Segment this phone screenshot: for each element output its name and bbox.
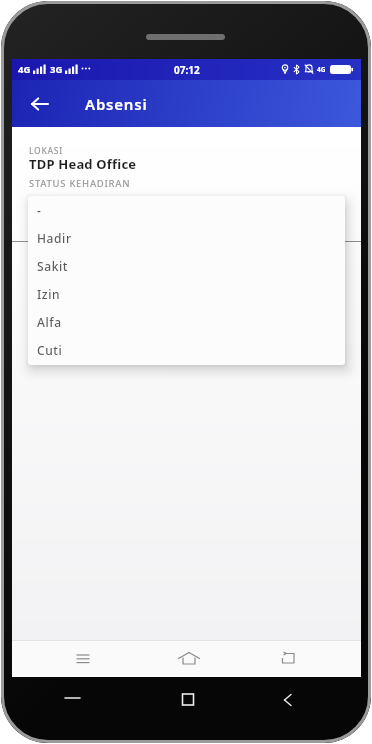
button[interactable] xyxy=(63,640,103,677)
staticText: Izin xyxy=(37,286,61,302)
staticText: Absensi xyxy=(85,94,148,114)
button[interactable]: Sakit xyxy=(28,252,345,280)
staticText: STATUS KEHADIRAN xyxy=(29,177,131,190)
staticText: TDP Head Office xyxy=(29,155,137,173)
button[interactable]: Cuti xyxy=(28,336,345,364)
staticText: 07:12 xyxy=(174,63,200,77)
button[interactable]: Alfa xyxy=(28,308,345,336)
button[interactable] xyxy=(12,80,68,127)
button[interactable] xyxy=(269,640,309,677)
button[interactable] xyxy=(169,640,209,677)
staticText: 4G xyxy=(317,65,326,74)
button[interactable]: Hadir xyxy=(28,224,345,252)
staticText: 3G xyxy=(50,63,63,76)
staticText: LOKASI xyxy=(29,145,63,157)
staticText: Hadir xyxy=(37,230,72,246)
staticText: 4G xyxy=(18,63,31,76)
staticText: Alfa xyxy=(37,314,62,330)
staticText: Cuti xyxy=(37,342,63,358)
button[interactable]: Izin xyxy=(28,280,345,308)
staticText: - xyxy=(37,202,42,218)
staticText: Sakit xyxy=(37,258,69,274)
